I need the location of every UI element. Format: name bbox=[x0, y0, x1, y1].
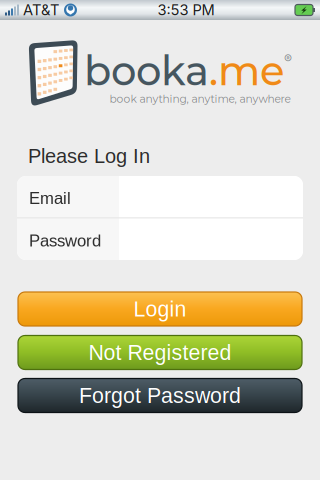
staticText: Email bbox=[29, 189, 71, 207]
staticText: book anything, anytime, anywhere bbox=[109, 92, 290, 105]
staticText: Forgot Password bbox=[79, 384, 241, 407]
staticText: Password bbox=[29, 231, 101, 250]
staticText: Not Registered bbox=[88, 341, 231, 364]
button[interactable]: Email bbox=[17, 176, 303, 217]
staticText: ® bbox=[284, 52, 292, 66]
staticText: booka bbox=[84, 47, 209, 95]
staticText: AT&T bbox=[23, 1, 59, 19]
button[interactable]: Forgot Password bbox=[18, 378, 302, 412]
staticText: Login bbox=[133, 297, 186, 321]
staticText: Please Log In bbox=[28, 145, 150, 167]
button[interactable]: Login bbox=[18, 292, 302, 326]
staticText: 3:53 PM bbox=[157, 1, 214, 19]
button[interactable]: Password bbox=[17, 218, 303, 260]
staticText: .me bbox=[209, 47, 284, 95]
button[interactable]: Not Registered bbox=[18, 335, 302, 369]
